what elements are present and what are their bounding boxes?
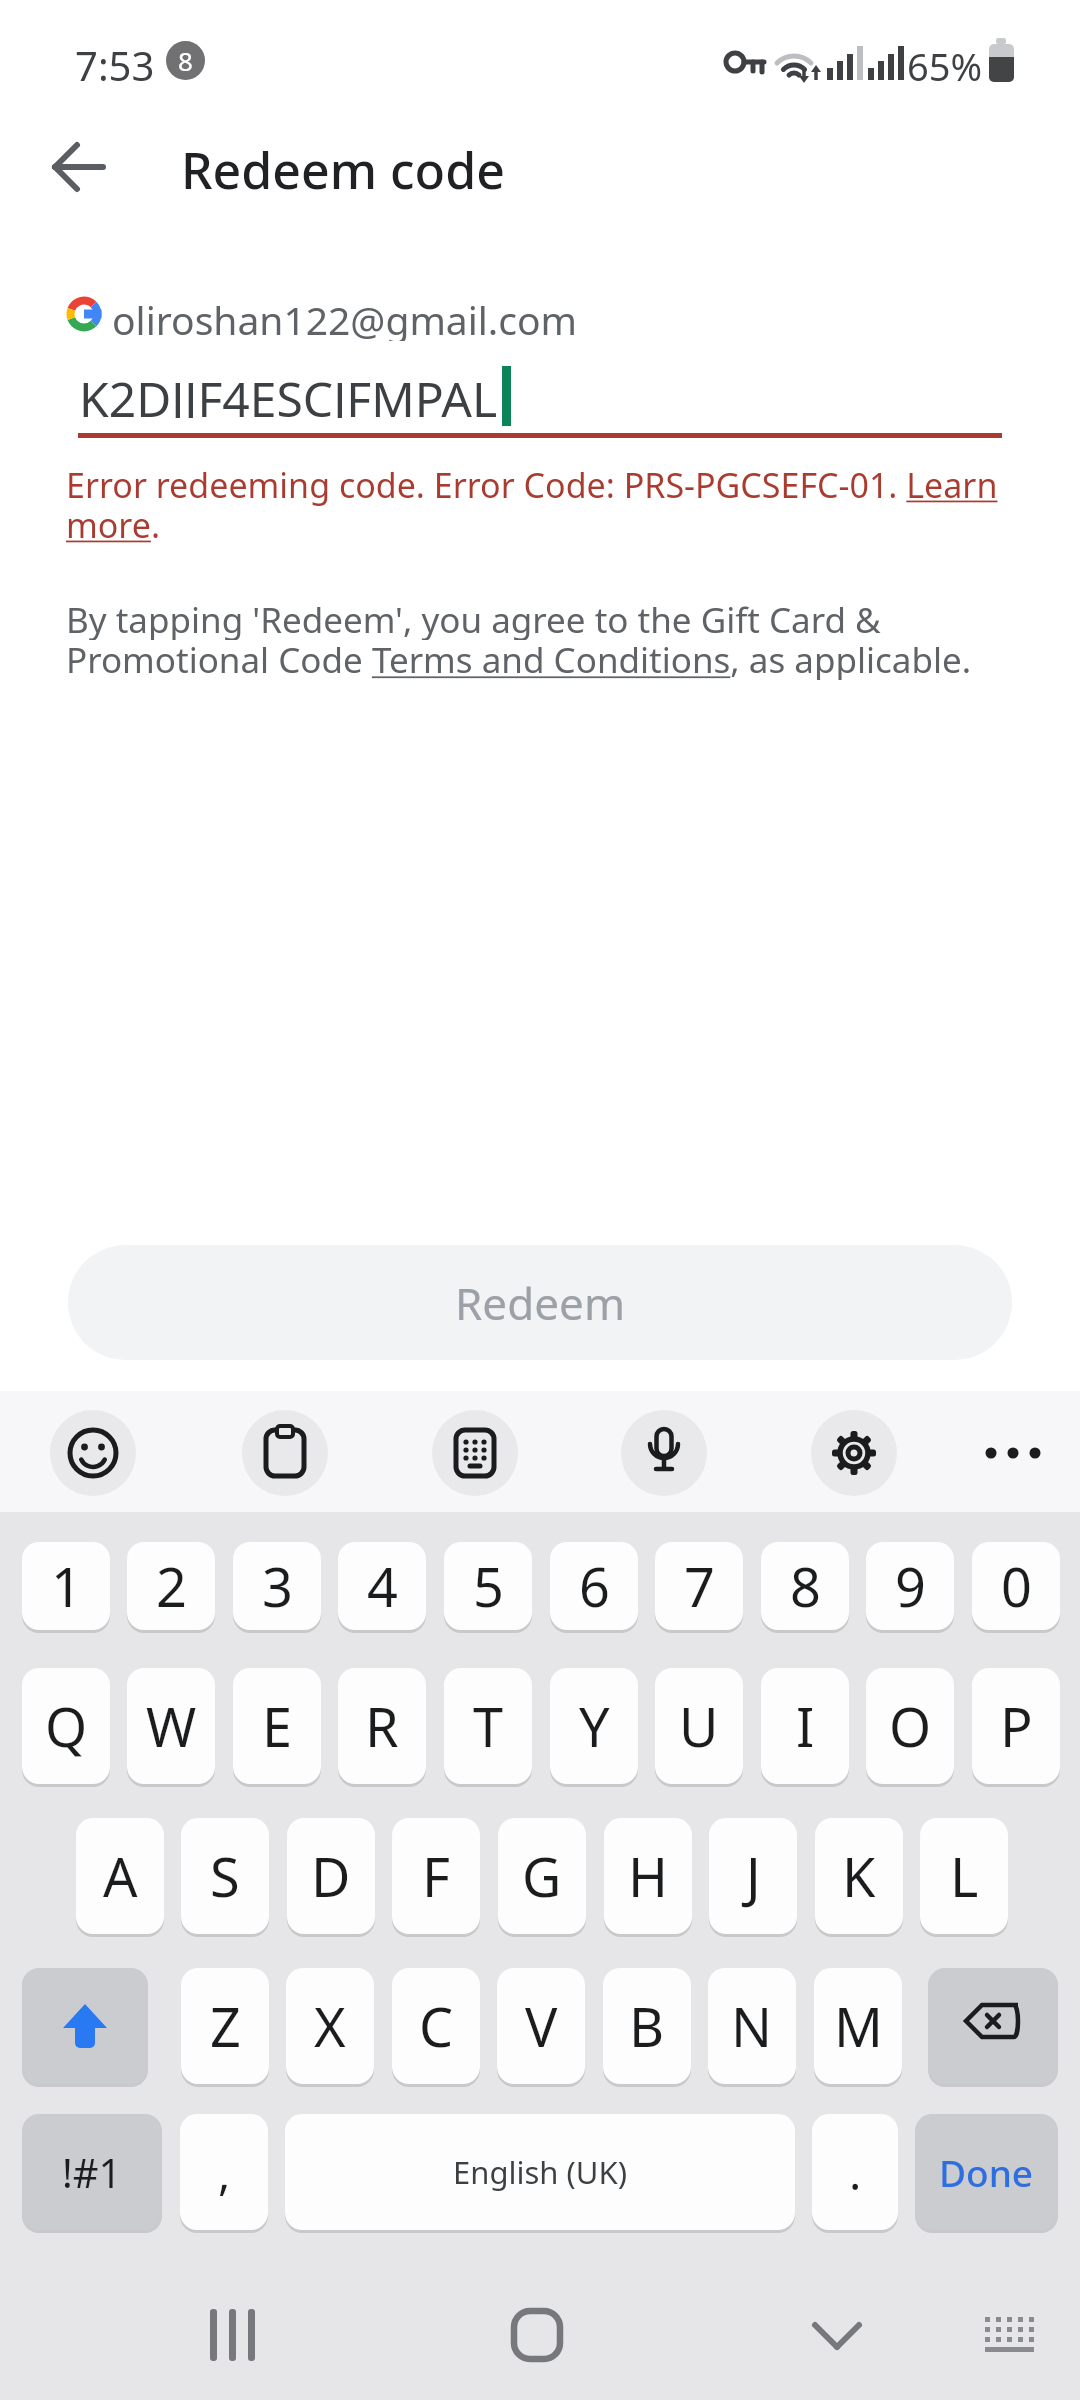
staticText: R (365, 1689, 399, 1763)
button[interactable]: Done (915, 2114, 1058, 2230)
button[interactable]: 8 (761, 1542, 849, 1630)
button[interactable]: S (181, 1818, 269, 1934)
button[interactable] (960, 2295, 1065, 2375)
button[interactable]: W (127, 1668, 215, 1784)
button[interactable]: R (338, 1668, 426, 1784)
staticText: H (628, 1839, 669, 1913)
button[interactable]: 9 (866, 1542, 954, 1630)
staticText: 65% (907, 40, 983, 84)
button[interactable]: F (392, 1818, 480, 1934)
button[interactable]: M (814, 1968, 902, 2084)
button[interactable] (180, 2295, 285, 2375)
staticText: M (834, 1989, 883, 2063)
button[interactable] (928, 1968, 1058, 2084)
staticText: . (849, 2141, 862, 2204)
button[interactable]: O (866, 1668, 954, 1784)
staticText: I (796, 1689, 815, 1763)
staticText: A (103, 1839, 138, 1913)
button[interactable]: 7 (655, 1542, 743, 1630)
staticText: Error redeeming code. Error Code: PRS-PG… (66, 462, 998, 506)
staticText: Z (210, 1989, 241, 2063)
button[interactable] (621, 1410, 707, 1496)
button[interactable]: D (287, 1818, 375, 1934)
staticText: K (842, 1839, 876, 1913)
staticText: K2DJJF4ESCJFMPAL (79, 366, 498, 418)
staticText: O (889, 1689, 932, 1763)
staticText: 7:53 (75, 38, 155, 86)
button[interactable]: I (761, 1668, 849, 1784)
staticText: 8 (790, 1549, 821, 1623)
button[interactable]: B (603, 1968, 691, 2084)
button[interactable]: E (233, 1668, 321, 1784)
button[interactable]: H (604, 1818, 692, 1934)
staticText: T (473, 1689, 504, 1763)
staticText: !#1 (62, 2145, 122, 2199)
staticText: J (746, 1839, 761, 1913)
staticText: L (950, 1839, 979, 1913)
button[interactable]: Q (22, 1668, 110, 1784)
staticText: oliroshan122@gmail.com (112, 293, 578, 341)
staticText: V (525, 1989, 558, 2063)
staticText: Done (939, 2147, 1034, 2197)
button[interactable] (811, 1410, 897, 1496)
button[interactable]: C (392, 1968, 480, 2084)
staticText: G (522, 1839, 562, 1913)
staticText: W (146, 1689, 197, 1763)
button[interactable]: 5 (444, 1542, 532, 1630)
button[interactable] (242, 1410, 328, 1496)
staticText: P (1000, 1689, 1033, 1763)
staticText: U (679, 1689, 719, 1763)
button[interactable]: K (815, 1818, 903, 1934)
button[interactable]: J (709, 1818, 797, 1934)
button[interactable]: !#1 (22, 2114, 162, 2230)
staticText: B (629, 1989, 665, 2063)
button[interactable]: 2 (127, 1542, 215, 1630)
staticText: English (UK) (453, 2151, 627, 2193)
button[interactable] (785, 2295, 890, 2375)
staticText: E (262, 1689, 293, 1763)
button[interactable] (970, 1410, 1056, 1496)
staticText: 0 (1001, 1549, 1032, 1623)
button[interactable]: X (286, 1968, 374, 2084)
button[interactable]: 3 (233, 1542, 321, 1630)
button[interactable]: G (498, 1818, 586, 1934)
staticText: By tapping 'Redeem', you agree to the Gi… (66, 596, 881, 640)
button[interactable]: 0 (972, 1542, 1060, 1630)
staticText: F (422, 1839, 451, 1913)
button[interactable] (40, 130, 118, 204)
button[interactable]: Y (550, 1668, 638, 1784)
staticText: Promotional Code Terms and Conditions, a… (66, 636, 972, 680)
button[interactable]: 1 (22, 1542, 110, 1630)
button[interactable]: A (76, 1818, 164, 1934)
button[interactable]: , (180, 2114, 268, 2230)
staticText: X (314, 1989, 346, 2063)
staticText: 2 (156, 1549, 187, 1623)
button[interactable] (50, 1410, 136, 1496)
button[interactable]: L (920, 1818, 1008, 1934)
button[interactable]: V (497, 1968, 585, 2084)
button[interactable]: Z (181, 1968, 269, 2084)
staticText: 3 (262, 1549, 293, 1623)
button[interactable]: U (655, 1668, 743, 1784)
button[interactable]: 6 (550, 1542, 638, 1630)
staticText: 9 (895, 1549, 926, 1623)
staticText: Y (579, 1689, 610, 1763)
button[interactable]: English (UK) (285, 2114, 795, 2230)
staticText: 4 (367, 1549, 398, 1623)
staticText: S (210, 1839, 240, 1913)
staticText: 1 (51, 1549, 82, 1623)
button[interactable]: . (812, 2114, 898, 2230)
button[interactable]: N (708, 1968, 796, 2084)
button[interactable]: Redeem (68, 1245, 1012, 1360)
button[interactable]: 4 (338, 1542, 426, 1630)
staticText: 8 (178, 43, 193, 78)
staticText: 7 (684, 1549, 715, 1623)
button[interactable]: P (972, 1668, 1060, 1784)
button[interactable] (485, 2295, 590, 2375)
button[interactable] (432, 1410, 518, 1496)
staticText: C (419, 1989, 454, 2063)
staticText: N (731, 1989, 773, 2063)
button[interactable]: T (444, 1668, 532, 1784)
button[interactable] (22, 1968, 148, 2084)
staticText: Q (45, 1689, 88, 1763)
